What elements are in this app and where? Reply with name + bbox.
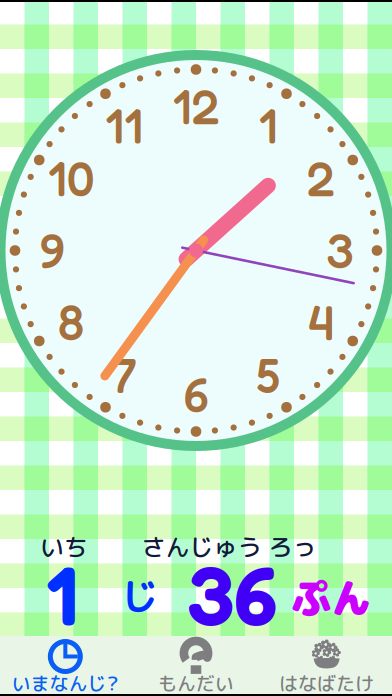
staticText: はなばたけ xyxy=(279,670,374,696)
staticText: 36 xyxy=(187,544,277,644)
staticText: 4 xyxy=(308,293,334,352)
staticText: ぷん xyxy=(291,570,371,626)
button[interactable]: いまなんじ? xyxy=(0,636,131,696)
staticText: 10 xyxy=(48,149,95,208)
staticText: 2 xyxy=(307,149,335,208)
button[interactable]: もんだい xyxy=(131,636,261,696)
staticText: じ xyxy=(121,570,158,622)
staticText: 6 xyxy=(183,365,208,424)
staticText: 1 xyxy=(46,544,78,644)
button[interactable]: はなばたけ xyxy=(261,636,392,696)
staticText: いまなんじ? xyxy=(12,670,119,696)
staticText: もんだい xyxy=(158,670,234,696)
staticText: 8 xyxy=(58,293,85,352)
staticText: いち xyxy=(40,530,88,564)
staticText: 3 xyxy=(326,221,354,280)
staticText: 5 xyxy=(256,346,280,404)
staticText: さんじゅう ろっ xyxy=(141,530,316,564)
staticText: 11 xyxy=(105,97,143,155)
staticText: 1 xyxy=(258,97,277,155)
staticText: 12 xyxy=(172,77,219,136)
staticText: 7 xyxy=(111,346,137,404)
staticText: 9 xyxy=(39,221,64,280)
